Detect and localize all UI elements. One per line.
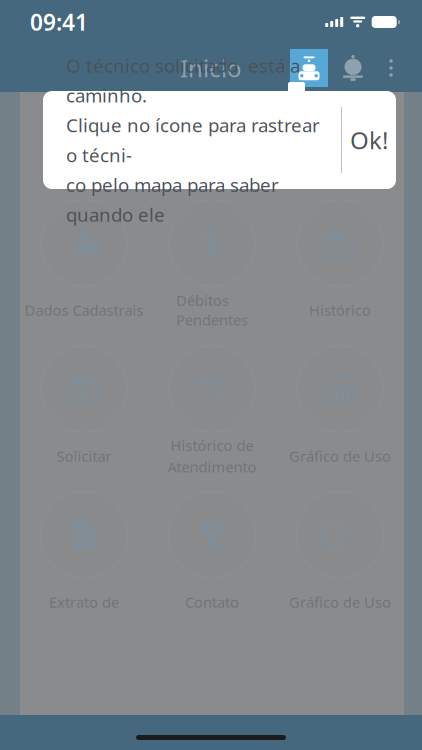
button[interactable]: Gráfico de Uso	[276, 492, 404, 617]
staticText: Gráfico de Uso	[289, 446, 391, 466]
button[interactable]: Gráfico de Uso	[276, 346, 404, 471]
staticText: Extrato de	[49, 592, 119, 612]
button[interactable]: Histórico de	[148, 346, 276, 471]
staticText: S	[203, 221, 221, 265]
staticText: Histórico de	[170, 435, 253, 455]
staticText: 09:41	[30, 7, 88, 37]
button[interactable]: Notificações	[334, 49, 372, 87]
button[interactable]: Dados Cadastrais	[20, 200, 148, 325]
button[interactable]: S	[148, 200, 276, 325]
staticText: Gráfico de Uso	[289, 592, 391, 612]
staticText: Histórico	[309, 300, 371, 320]
button[interactable]: Mais opções	[376, 49, 406, 87]
staticText: O técnico solicitado está a caminho. Cli…	[66, 53, 320, 227]
staticText: Inicio	[180, 52, 242, 84]
staticText: Solicitar	[56, 446, 111, 466]
staticText: Dados Cadastrais	[24, 300, 143, 320]
staticText: Atendimento	[167, 457, 256, 476]
staticText: Débitos Pendentes	[176, 290, 248, 329]
button[interactable]: Extrato de	[20, 492, 148, 617]
button[interactable]: Rastrear técnico no mapa	[290, 49, 328, 87]
staticText: Contato	[185, 592, 239, 612]
staticText: Ok!	[350, 124, 388, 156]
button[interactable]: Ok!	[342, 91, 396, 189]
